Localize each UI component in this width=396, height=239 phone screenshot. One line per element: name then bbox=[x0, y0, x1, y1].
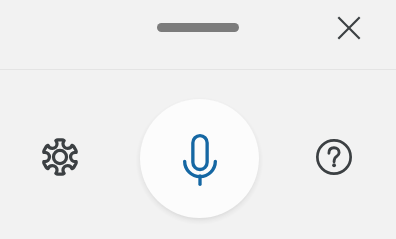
button[interactable]: Close bbox=[325, 4, 373, 52]
button[interactable]: Drag handle bbox=[157, 23, 239, 32]
button[interactable]: Help bbox=[310, 133, 358, 181]
button[interactable]: Settings bbox=[36, 133, 84, 181]
button[interactable]: Microphone bbox=[140, 99, 259, 218]
